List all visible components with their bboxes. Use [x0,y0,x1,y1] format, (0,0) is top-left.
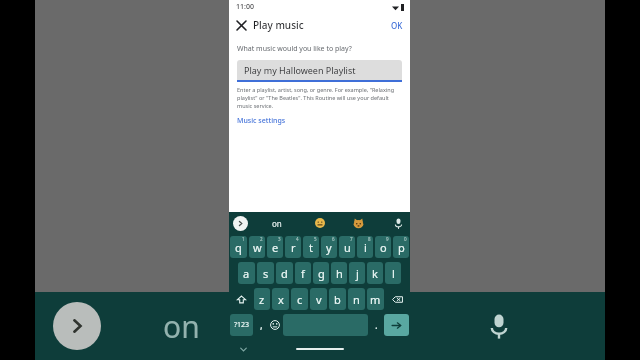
staticText: v [316,292,322,307]
button[interactable]: Period [370,314,382,336]
staticText: 0 [404,236,407,242]
button[interactable]: Music settings [237,115,286,127]
staticText: 7 [350,236,353,242]
staticText: OK [391,20,403,31]
button[interactable]: u [339,236,355,258]
button[interactable]: x [272,288,289,310]
button[interactable]: OK [384,17,410,34]
staticText: a [243,266,250,281]
staticText: w [253,240,262,255]
staticText: . [375,318,378,332]
button[interactable]: w [249,236,265,258]
staticText: r [291,240,296,255]
button[interactable]: ?123 [230,314,253,336]
staticText: 8 [368,236,371,242]
staticText: e [272,240,279,255]
button[interactable]: Neutral face emoji [315,218,325,228]
staticText: Enter a playlist, artist, song, or genre… [237,86,402,110]
button[interactable]: Expand suggestions [233,216,248,231]
staticText: g [318,266,325,281]
staticText: n [353,292,360,307]
staticText: z [259,292,265,307]
staticText: j [356,266,359,281]
staticText: f [301,266,305,281]
button[interactable]: Comma [255,314,267,336]
staticText: ?123 [234,320,250,330]
staticText: Music settings [237,116,286,126]
button[interactable]: b [329,288,346,310]
button[interactable]: Hide keyboard [237,343,249,355]
button[interactable]: Close [232,16,250,34]
button[interactable]: Emoji [269,314,281,336]
staticText: 3 [278,236,281,242]
staticText: What music would you like to play? [237,44,352,54]
staticText: 2 [260,236,263,242]
button[interactable]: f [295,262,311,284]
staticText: on [272,218,282,229]
button[interactable]: c [291,288,308,310]
button[interactable]: s [257,262,274,284]
staticText: y [326,240,332,255]
staticText: 11:00 [236,2,254,12]
staticText: Play my Halloween Playlist [244,64,356,76]
staticText: b [334,292,341,307]
button[interactable]: on [266,216,288,231]
button[interactable]: p [393,236,409,258]
staticText: , [260,318,263,332]
staticText: t [309,240,313,255]
staticText: k [372,266,378,281]
staticText: d [281,266,288,281]
staticText: o [380,240,387,255]
button[interactable]: m [367,288,384,310]
button[interactable]: t [303,236,319,258]
button[interactable]: Expand suggestions [53,302,101,350]
staticText: m [370,292,381,307]
button[interactable]: z [254,288,270,310]
button[interactable]: e [267,236,283,258]
button[interactable]: j [349,262,365,284]
staticText: h [336,266,343,281]
staticText: 5 [314,236,317,242]
button[interactable]: l [385,262,401,284]
button[interactable]: o [375,236,391,258]
button[interactable]: Enter [384,314,409,336]
staticText: 6 [332,236,335,242]
staticText: q [235,240,242,255]
staticText: Play music [253,18,304,32]
button[interactable]: r [285,236,301,258]
button[interactable]: h [331,262,347,284]
button[interactable]: Play my Halloween Playlist [237,60,402,82]
staticText: x [278,292,284,307]
staticText: 4 [296,236,299,242]
staticText: 1 [242,236,245,242]
staticText: s [263,266,269,281]
button[interactable]: v [310,288,327,310]
button[interactable]: i [357,236,373,258]
button[interactable]: Voice input [392,217,405,230]
button[interactable]: n [348,288,365,310]
staticText: u [344,240,351,255]
staticText: i [364,240,367,255]
button[interactable]: Cat emoji [353,218,364,229]
staticText: 9 [386,236,389,242]
button[interactable]: y [321,236,337,258]
button[interactable]: g [313,262,329,284]
button[interactable]: q [230,236,247,258]
button[interactable]: Backspace [386,288,409,310]
staticText: p [398,240,405,255]
button[interactable]: k [367,262,383,284]
staticText: l [392,266,395,281]
button[interactable]: a [238,262,255,284]
staticText: c [297,292,303,307]
button[interactable]: d [276,262,293,284]
button[interactable]: Shift [230,288,252,310]
staticText: on [163,306,200,347]
